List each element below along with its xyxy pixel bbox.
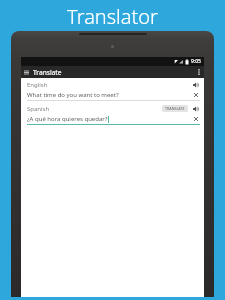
button[interactable]: More options (194, 66, 204, 78)
staticText: Translate (33, 68, 62, 77)
button[interactable]: Speak text aloud (191, 80, 200, 89)
staticText: ¿A qué hora quieres quedar? (27, 115, 108, 123)
staticText: Spanish (27, 105, 50, 113)
staticText: Translator (67, 3, 158, 30)
button[interactable]: TRANSLATE (162, 105, 188, 112)
button[interactable]: What time do you want to meet? (27, 90, 200, 100)
staticText: English (27, 81, 48, 89)
button[interactable]: Clear text (192, 115, 200, 123)
staticText: What time do you want to meet? (27, 91, 119, 99)
staticText: 9:05 (191, 58, 201, 65)
button[interactable]: Speak text aloud (191, 104, 200, 113)
button[interactable]: Open navigation drawer (21, 66, 32, 78)
staticText: TRANSLATE (165, 106, 185, 111)
button[interactable]: Clear text (192, 91, 200, 99)
button[interactable]: ¿A qué hora quieres quedar? (27, 114, 200, 124)
